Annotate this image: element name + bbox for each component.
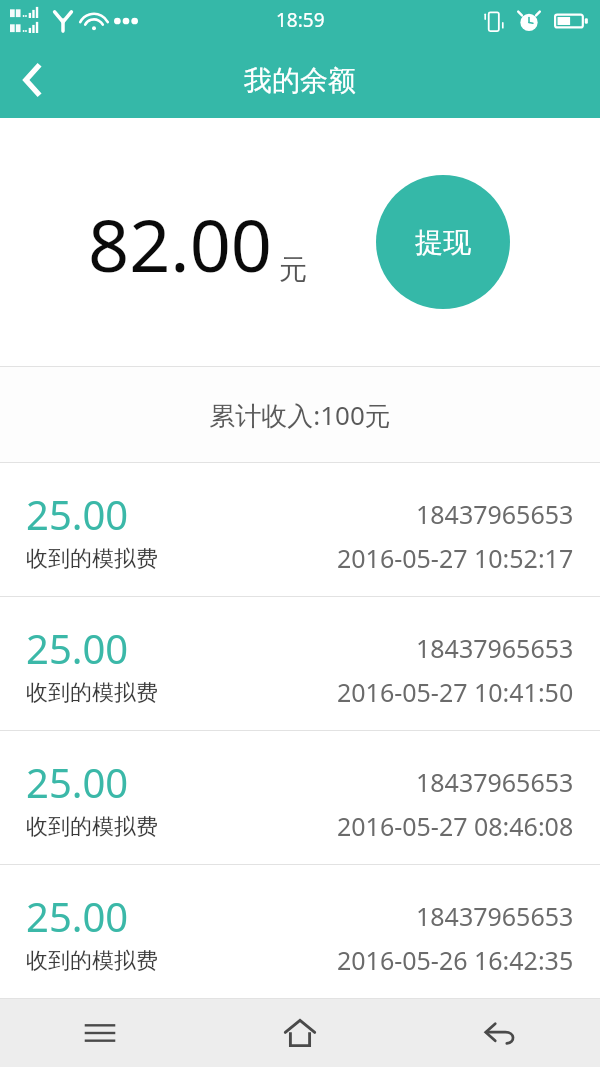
staticText: 我的余额 [244,63,356,98]
staticText: 18437965653 [416,899,574,933]
staticText: 18437965653 [416,765,574,799]
button[interactable]: 25.00 [0,865,600,998]
staticText: 82.00 [88,195,273,293]
button[interactable]: Back [0,48,64,112]
staticText: 收到的模拟费 [26,947,158,975]
button[interactable]: 25.00 [0,597,600,730]
staticText: 2016-05-27 10:52:17 [337,541,574,575]
staticText: 18:59 [276,7,325,33]
staticText: 2016-05-27 10:41:50 [337,675,574,709]
button[interactable]: 提现 [376,175,510,309]
staticText: 2016-05-27 08:46:08 [337,809,574,843]
staticText: 18437965653 [416,497,574,531]
staticText: 2016-05-26 16:42:35 [337,943,574,977]
staticText: 累计收入:100元 [209,397,391,433]
staticText: 提现 [415,225,471,260]
staticText: 25.00 [26,755,129,809]
staticText: 25.00 [26,889,129,943]
button[interactable]: Back [400,999,600,1067]
button[interactable]: 25.00 [0,731,600,864]
staticText: 元 [279,252,307,287]
button[interactable]: Menu [0,999,200,1067]
staticText: 收到的模拟费 [26,679,158,707]
button[interactable]: 25.00 [0,463,600,596]
button[interactable]: Home [200,999,400,1067]
staticText: 25.00 [26,621,129,675]
staticText: 收到的模拟费 [26,545,158,573]
staticText: 25.00 [26,487,129,541]
staticText: 收到的模拟费 [26,813,158,841]
staticText: 18437965653 [416,631,574,665]
